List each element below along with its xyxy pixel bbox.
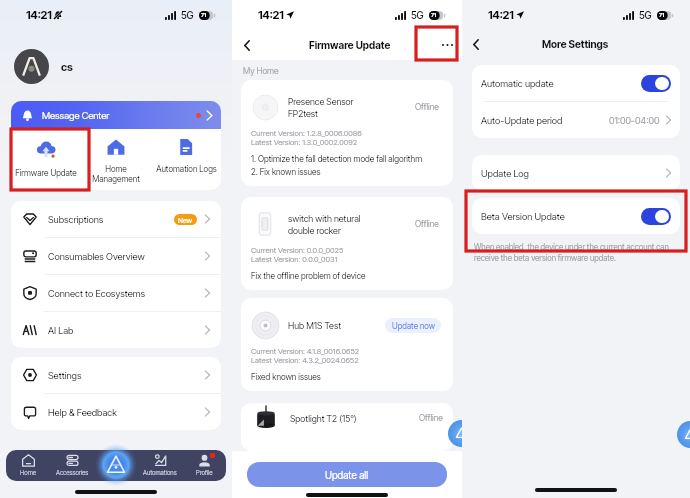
staticText: AI Lab — [48, 325, 74, 336]
staticText: Update all — [325, 469, 369, 481]
staticText: Update Log — [481, 168, 529, 179]
staticText: Connect to Ecosystems — [48, 288, 146, 299]
staticText: Offline — [415, 219, 439, 229]
button[interactable]: Automations — [138, 450, 182, 481]
button[interactable]: Assistant — [95, 444, 137, 486]
button[interactable]: More options — [436, 34, 458, 56]
staticText: Profile — [196, 469, 213, 477]
staticText: switch with netural double rocker — [288, 213, 361, 236]
button[interactable]: cs — [14, 49, 218, 84]
staticText: Presence Sensor FP2test — [288, 96, 354, 119]
staticText: Subscriptions — [48, 214, 104, 225]
staticText: Hub M1S Test — [288, 320, 342, 331]
staticText: Home Management — [92, 164, 140, 184]
staticText: cs — [61, 60, 73, 73]
button[interactable]: Profile — [182, 450, 226, 481]
staticText: My Home — [243, 66, 279, 76]
staticText: Latest Version: 4.3.2_0024.0652 — [251, 355, 359, 364]
staticText: Consumables Overview — [48, 251, 145, 262]
button[interactable]: Settings — [11, 357, 221, 393]
button[interactable] — [641, 208, 671, 225]
staticText: 2. Fix known issues — [251, 167, 321, 177]
staticText: Settings — [48, 370, 82, 381]
staticText: Automations — [143, 469, 177, 477]
staticText: 71 — [659, 12, 665, 19]
button[interactable]: Update now — [385, 318, 441, 333]
staticText: 14:21 — [258, 8, 284, 22]
staticText: Fix the offline problem of device — [251, 271, 366, 281]
button[interactable]: Hub M1S Test — [241, 298, 453, 391]
button[interactable]: Back — [473, 34, 493, 54]
button[interactable]: Update all — [247, 462, 447, 487]
staticText: Spotlight T2 (15°) — [290, 413, 357, 424]
staticText: Fixed known issues — [251, 372, 321, 382]
staticText: Auto-Update period — [481, 115, 563, 126]
staticText: Firmware Update — [309, 39, 391, 51]
staticText: New — [178, 216, 193, 224]
staticText: Automatic update — [481, 78, 554, 89]
staticText: 14:21 — [488, 8, 514, 22]
staticText: Help & Feedback — [48, 407, 117, 418]
staticText: Latest Version: 0.0.0_0031 — [251, 254, 338, 263]
button[interactable]: Home — [6, 450, 50, 481]
staticText: When enabled, the device under the curre… — [474, 242, 678, 263]
button[interactable]: Automation Logs — [151, 129, 221, 190]
button[interactable]: Message Center — [11, 101, 221, 129]
button[interactable] — [641, 75, 671, 92]
staticText: 14:21 — [26, 8, 52, 22]
staticText: Current Version: 0.0.0_0025 — [251, 245, 344, 254]
button[interactable]: Auto-Update period — [472, 102, 680, 138]
staticText: Firmware Update — [15, 168, 77, 178]
button[interactable]: Update Log — [472, 155, 680, 191]
staticText: Home — [20, 469, 37, 477]
staticText: Offline — [419, 413, 443, 423]
staticText: Accessories — [56, 469, 89, 477]
button[interactable]: switch with netural double rocker — [241, 197, 453, 290]
button[interactable]: Consumables Overview — [11, 238, 221, 274]
staticText: Offline — [415, 102, 439, 112]
staticText: Latest Version: 1.3.0_0002.0092 — [251, 137, 357, 146]
button[interactable]: Automatic update — [472, 65, 680, 101]
button[interactable]: Beta Version Update — [472, 198, 680, 234]
staticText: 5G — [411, 9, 424, 21]
button[interactable]: Assistant — [448, 420, 475, 447]
button[interactable]: Back — [244, 35, 264, 55]
button[interactable]: Home Management — [81, 129, 151, 190]
button[interactable]: Spotlight T2 (15°) — [241, 403, 453, 451]
staticText: Current Version: 1.2.8_0006.0086 — [251, 128, 362, 137]
staticText: 71 — [201, 12, 207, 19]
button[interactable]: Accessories — [50, 450, 94, 481]
staticText: 5G — [639, 9, 652, 21]
button[interactable]: Assistant — [677, 421, 690, 448]
staticText: Automation Logs — [156, 164, 217, 174]
staticText: 1. Optimize the fall detection mode fall… — [251, 154, 423, 164]
button[interactable]: Connect to Ecosystems — [11, 275, 221, 311]
button[interactable]: AI Lab — [11, 312, 221, 348]
staticText: Update now — [392, 321, 435, 331]
button[interactable]: Help & Feedback — [11, 394, 221, 430]
staticText: Beta Version Update — [481, 211, 565, 222]
staticText: 01:00-04:00 — [609, 115, 660, 126]
button[interactable]: Presence Sensor FP2test — [241, 80, 453, 186]
staticText: 71 — [431, 12, 437, 19]
staticText: More Settings — [542, 38, 609, 50]
staticText: Current Version: 4.1.8_0016.0652 — [251, 346, 360, 355]
button[interactable]: Firmware Update — [11, 129, 81, 190]
button[interactable]: Subscriptions — [11, 201, 221, 237]
staticText: Message Center — [42, 110, 110, 121]
staticText: 5G — [181, 9, 194, 21]
